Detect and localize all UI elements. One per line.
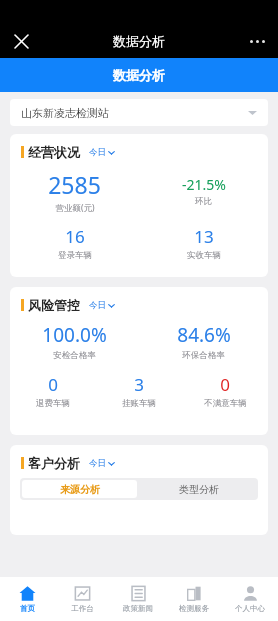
staticText: 数据分析: [113, 67, 165, 83]
staticText: 84.6%: [177, 322, 231, 348]
staticText: 安检合格率: [53, 350, 96, 361]
staticText: 环比: [195, 196, 212, 207]
staticText: 0: [220, 373, 230, 396]
button[interactable]: 来源分析: [22, 480, 137, 498]
staticText: 今日: [89, 300, 106, 311]
staticText: 客户分析: [28, 455, 80, 471]
button[interactable]: 今日: [89, 147, 115, 158]
staticText: 首页: [20, 604, 35, 613]
staticText: 经营状况: [28, 144, 80, 160]
button[interactable]: 今日: [89, 458, 115, 469]
button[interactable]: 政策新闻: [110, 577, 166, 621]
staticText: 工作台: [71, 604, 94, 613]
staticText: 退费车辆: [36, 398, 70, 409]
staticText: 政策新闻: [123, 604, 153, 613]
button[interactable]: Close: [6, 26, 36, 56]
button[interactable]: 风险管控: [10, 287, 268, 435]
staticText: 今日: [89, 147, 106, 158]
staticText: 0: [48, 373, 58, 396]
button[interactable]: More options: [242, 26, 272, 56]
staticText: 13: [194, 225, 214, 248]
staticText: 风险管控: [28, 297, 80, 313]
staticText: 山东新凌志检测站: [21, 106, 109, 120]
staticText: 营业额(元): [55, 202, 95, 214]
staticText: 数据分析: [113, 33, 165, 49]
staticText: 个人中心: [235, 604, 265, 613]
staticText: 环保合格率: [182, 350, 225, 361]
staticText: 不满意车辆: [204, 398, 247, 409]
button[interactable]: 个人中心: [222, 577, 278, 621]
staticText: 100.0%: [42, 322, 107, 348]
staticText: 16: [65, 225, 85, 248]
button[interactable]: 山东新凌志检测站: [10, 99, 268, 126]
staticText: 登录车辆: [58, 250, 92, 261]
staticText: 2585: [48, 169, 101, 200]
staticText: 来源分析: [60, 483, 100, 496]
staticText: 3: [134, 373, 144, 396]
button[interactable]: 首页: [0, 577, 55, 621]
staticText: 类型分析: [179, 483, 219, 496]
staticText: 今日: [89, 458, 106, 469]
button[interactable]: 检测服务: [166, 577, 222, 621]
button[interactable]: 类型分析: [139, 478, 258, 500]
staticText: -21.5%: [182, 175, 226, 194]
staticText: 实收车辆: [187, 250, 221, 261]
staticText: 检测服务: [179, 604, 209, 613]
button[interactable]: 工作台: [55, 577, 110, 621]
button[interactable]: 数据分析: [0, 58, 278, 92]
button[interactable]: 经营状况: [10, 134, 268, 277]
button[interactable]: 今日: [89, 300, 115, 311]
staticText: 挂账车辆: [122, 398, 156, 409]
